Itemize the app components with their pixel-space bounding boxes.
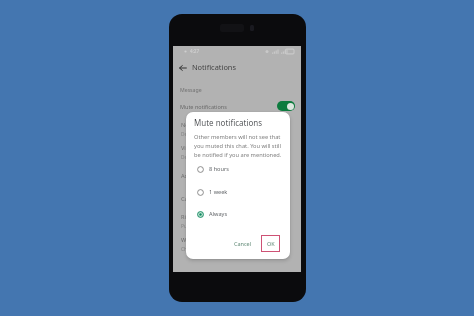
staticText: Always (209, 210, 228, 218)
button[interactable]: Back (177, 62, 189, 74)
staticText: Wallpaper (181, 236, 208, 244)
staticText: Mute notifications (194, 117, 263, 128)
staticText: Cancel (234, 240, 252, 247)
staticText: Calls (181, 195, 194, 203)
button[interactable]: Mute notifications (173, 98, 301, 114)
button[interactable]: OK (261, 235, 280, 252)
staticText: 1 week (209, 188, 228, 196)
staticText: Mute notifications (180, 103, 227, 110)
button[interactable]: Cancel (231, 237, 255, 250)
staticText: 8 hours (209, 165, 229, 173)
staticText: Message (180, 86, 202, 93)
staticText: Other members will not see that you mute… (194, 133, 282, 158)
staticText: 4:27 (190, 48, 200, 54)
button[interactable]: Always (186, 206, 290, 222)
staticText: OK (267, 240, 275, 247)
button[interactable]: 8 hours (186, 161, 290, 177)
staticText: Default (181, 154, 198, 161)
button[interactable]: Calls (173, 187, 301, 210)
staticText: Advanced (181, 172, 207, 180)
button[interactable]: Notification tone (173, 118, 301, 141)
button[interactable]: Wallpaper (173, 233, 301, 256)
button[interactable]: Vibrate (173, 141, 301, 164)
button[interactable]: 1 week (186, 184, 290, 200)
staticText: Choose (181, 246, 198, 253)
button[interactable]: Advanced (173, 164, 301, 187)
staticText: Vibrate (181, 144, 200, 152)
staticText: Pulse (181, 223, 194, 230)
staticText: Default (181, 131, 198, 138)
staticText: Notifications (192, 62, 236, 72)
staticText: Ringtone (181, 213, 205, 221)
button[interactable]: Ringtone (173, 210, 301, 233)
staticText: Notification tone (181, 121, 226, 129)
